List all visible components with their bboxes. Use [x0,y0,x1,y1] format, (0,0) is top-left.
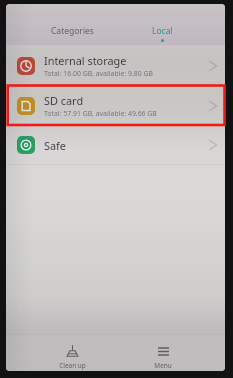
staticText: Local [152,25,173,37]
staticText: Safe [44,138,66,153]
staticText: Total: 16.00 GB, available: 9.80 GB [44,69,153,78]
button[interactable]: Categories [45,21,100,41]
staticText: Categories [51,25,94,37]
staticText: SD card [44,93,84,108]
button[interactable]: SD card [6,86,225,125]
staticText: Total: 57.91 GB, available: 49.66 GB [44,109,157,118]
staticText: Clean up [59,361,86,370]
button[interactable]: Internal storage [6,45,225,86]
button[interactable]: Safe [6,125,225,165]
button[interactable]: Clean up [53,342,92,371]
button[interactable]: Menu [148,342,178,371]
staticText: Internal storage [44,53,127,68]
staticText: Menu [154,361,172,370]
button[interactable]: Local [146,21,179,46]
